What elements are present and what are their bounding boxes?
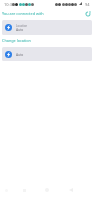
button[interactable]: Refresh	[82, 8, 93, 19]
staticText: Change location	[2, 38, 31, 43]
button[interactable]: Recent apps	[19, 185, 29, 195]
staticText: 94	[85, 2, 90, 7]
button[interactable]: Back	[66, 185, 76, 195]
button[interactable]: Location	[2, 20, 92, 35]
staticText: You are connected with	[2, 11, 44, 16]
staticText: Auto	[16, 52, 24, 56]
staticText: Location	[16, 24, 28, 28]
staticText: 10:30	[4, 2, 15, 7]
button[interactable]: Home	[42, 185, 52, 195]
staticText: Auto	[16, 27, 24, 31]
button[interactable]: Auto	[2, 47, 92, 61]
